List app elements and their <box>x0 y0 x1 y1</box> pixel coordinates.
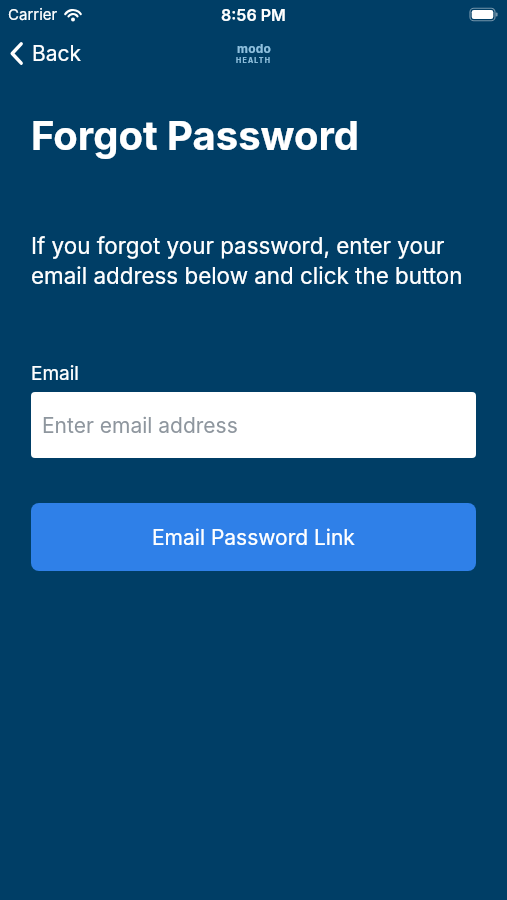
staticText: If you forgot your password, enter your … <box>31 232 476 289</box>
staticText: Carrier <box>8 5 58 23</box>
staticText: 8:56 PM <box>221 5 286 24</box>
staticText: Enter email address <box>42 413 238 438</box>
staticText: Email Password Link <box>152 525 355 550</box>
staticText: Back <box>32 41 82 66</box>
staticText: HEALTH <box>236 56 272 64</box>
button[interactable]: Email Password Link <box>31 503 476 571</box>
staticText: Forgot Password <box>31 111 360 159</box>
button[interactable]: Enter email address <box>31 392 476 458</box>
staticText: modo <box>237 41 272 56</box>
button[interactable]: Back <box>0 41 82 66</box>
staticText: Email <box>31 362 79 385</box>
